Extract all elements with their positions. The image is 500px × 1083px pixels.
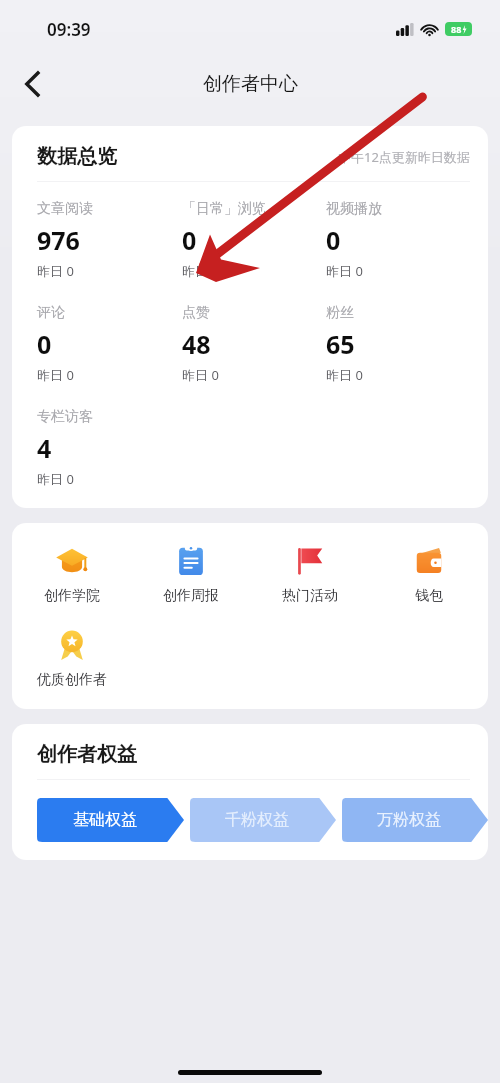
button[interactable]: 「日常」浏览 <box>182 200 266 280</box>
button[interactable]: 视频播放 <box>326 200 382 280</box>
button[interactable]: 钱包 <box>369 539 488 609</box>
staticText: 千粉权益 <box>225 810 289 830</box>
staticText: 创作者中心 <box>203 72 298 96</box>
staticText: 4 <box>37 431 52 465</box>
button[interactable]: 基础权益 <box>37 798 184 842</box>
staticText: 88 <box>451 23 462 35</box>
staticText: 09:39 <box>47 18 91 41</box>
button[interactable]: 创作周报 <box>131 539 250 609</box>
button[interactable]: 文章阅读 <box>37 200 93 280</box>
staticText: 昨日 0 <box>37 366 74 384</box>
staticText: 专栏访客 <box>37 408 93 426</box>
staticText: 昨日 0 <box>182 262 219 280</box>
staticText: 昨日 0 <box>326 366 363 384</box>
button[interactable]: 专栏访客 <box>37 408 93 488</box>
button[interactable]: 评论 <box>37 304 74 384</box>
button[interactable]: 创作学院 <box>12 539 131 609</box>
button[interactable]: 千粉权益 <box>190 798 336 842</box>
staticText: 昨日 0 <box>182 366 219 384</box>
button[interactable]: 万粉权益 <box>342 798 488 842</box>
button[interactable]: Back <box>10 62 54 106</box>
button[interactable]: 点赞 <box>182 304 219 384</box>
staticText: 0 <box>326 223 341 257</box>
staticText: 创作者权益 <box>37 742 137 767</box>
staticText: 昨日 0 <box>326 262 363 280</box>
staticText: 评论 <box>37 304 65 322</box>
staticText: 热门活动 <box>282 587 338 605</box>
staticText: 创作周报 <box>163 587 219 605</box>
staticText: 昨日 0 <box>37 262 74 280</box>
button[interactable]: 热门活动 <box>250 539 369 609</box>
staticText: 基础权益 <box>73 810 137 830</box>
staticText: 中午12点更新昨日数据 <box>338 148 470 166</box>
staticText: 粉丝 <box>326 304 354 322</box>
staticText: 976 <box>37 223 80 257</box>
staticText: 万粉权益 <box>377 810 441 830</box>
staticText: 48 <box>182 327 211 361</box>
staticText: 0 <box>37 327 52 361</box>
staticText: 数据总览 <box>37 144 117 169</box>
staticText: 点赞 <box>182 304 210 322</box>
staticText: 0 <box>182 223 197 257</box>
staticText: 视频播放 <box>326 200 382 218</box>
staticText: 昨日 0 <box>37 470 74 488</box>
staticText: 创作学院 <box>44 587 100 605</box>
staticText: 65 <box>326 327 355 361</box>
staticText: 文章阅读 <box>37 200 93 218</box>
staticText: 优质创作者 <box>37 671 107 689</box>
button[interactable]: 优质创作者 <box>12 623 131 693</box>
button[interactable]: 粉丝 <box>326 304 363 384</box>
staticText: 「日常」浏览 <box>182 200 266 218</box>
staticText: 钱包 <box>415 587 443 605</box>
